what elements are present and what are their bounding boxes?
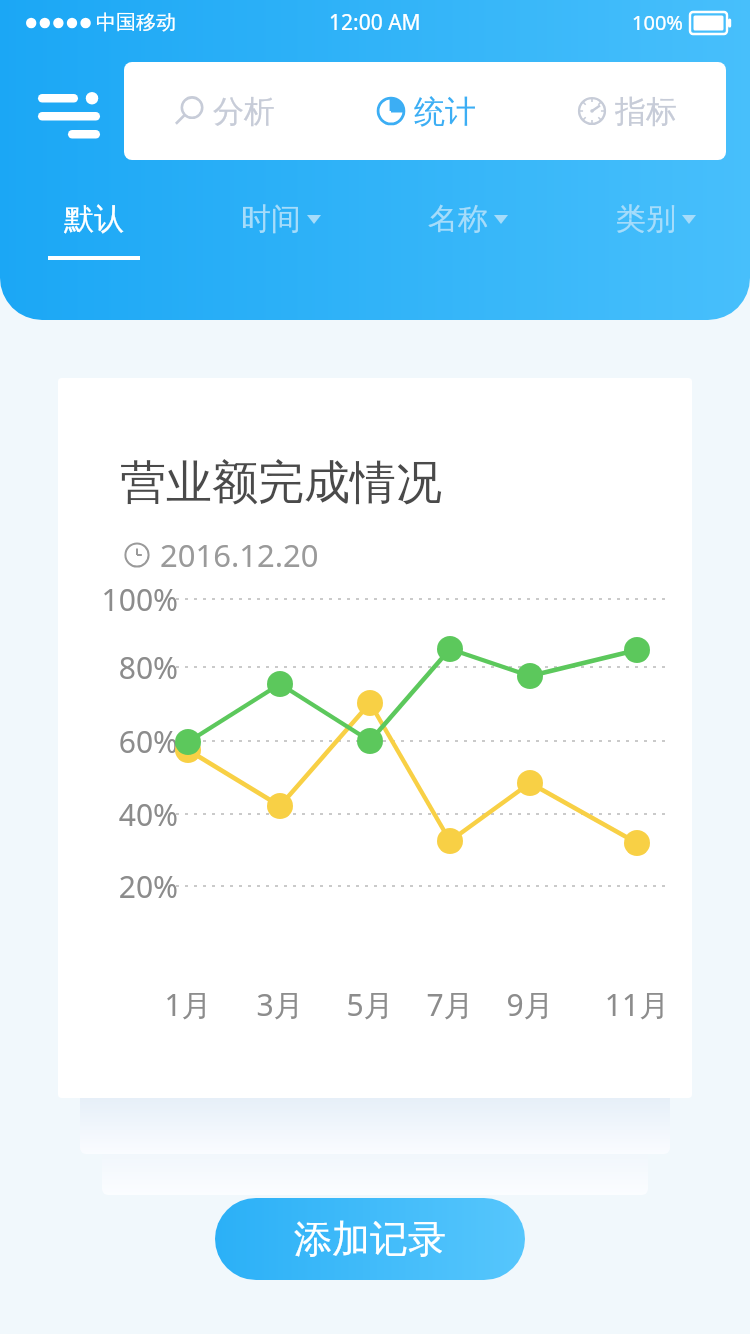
staticText: 3月 <box>240 984 320 1025</box>
button[interactable]: 名称 <box>374 200 562 290</box>
button[interactable]: Menu <box>30 78 96 144</box>
button[interactable]: 时间 <box>187 200 374 290</box>
staticText: 时间 <box>241 200 301 238</box>
staticText: 7月 <box>410 984 490 1025</box>
staticText: 统计 <box>414 92 476 131</box>
staticText: 分析 <box>213 92 275 131</box>
staticText: 营业额完成情况 <box>120 454 442 512</box>
button[interactable]: 分析 <box>124 62 324 160</box>
staticText: 中国移动 <box>96 10 176 35</box>
staticText: 名称 <box>428 200 488 238</box>
button[interactable]: 指标 <box>525 62 726 160</box>
staticText: 类别 <box>616 200 676 238</box>
button[interactable]: 统计 <box>324 62 525 160</box>
staticText: 12:00 AM <box>329 8 421 37</box>
staticText: 40% <box>88 794 178 835</box>
staticText: 默认 <box>64 200 124 238</box>
staticText: 60% <box>88 721 178 762</box>
staticText: 1月 <box>148 984 228 1025</box>
button[interactable]: 类别 <box>562 200 750 290</box>
staticText: 20% <box>88 866 178 907</box>
staticText: 添加记录 <box>294 1215 446 1263</box>
staticText: 80% <box>88 647 178 688</box>
staticText: 100% <box>88 579 178 620</box>
staticText: 2016.12.20 <box>160 534 319 576</box>
staticText: 5月 <box>330 984 410 1025</box>
button[interactable]: 默认 <box>0 200 187 290</box>
staticText: 100% <box>632 9 683 36</box>
staticText: 9月 <box>490 984 570 1025</box>
staticText: 指标 <box>615 92 677 131</box>
button[interactable]: 添加记录 <box>215 1198 525 1280</box>
staticText: 11月 <box>597 984 677 1025</box>
button[interactable]: 营业额完成情况 <box>58 378 692 1098</box>
